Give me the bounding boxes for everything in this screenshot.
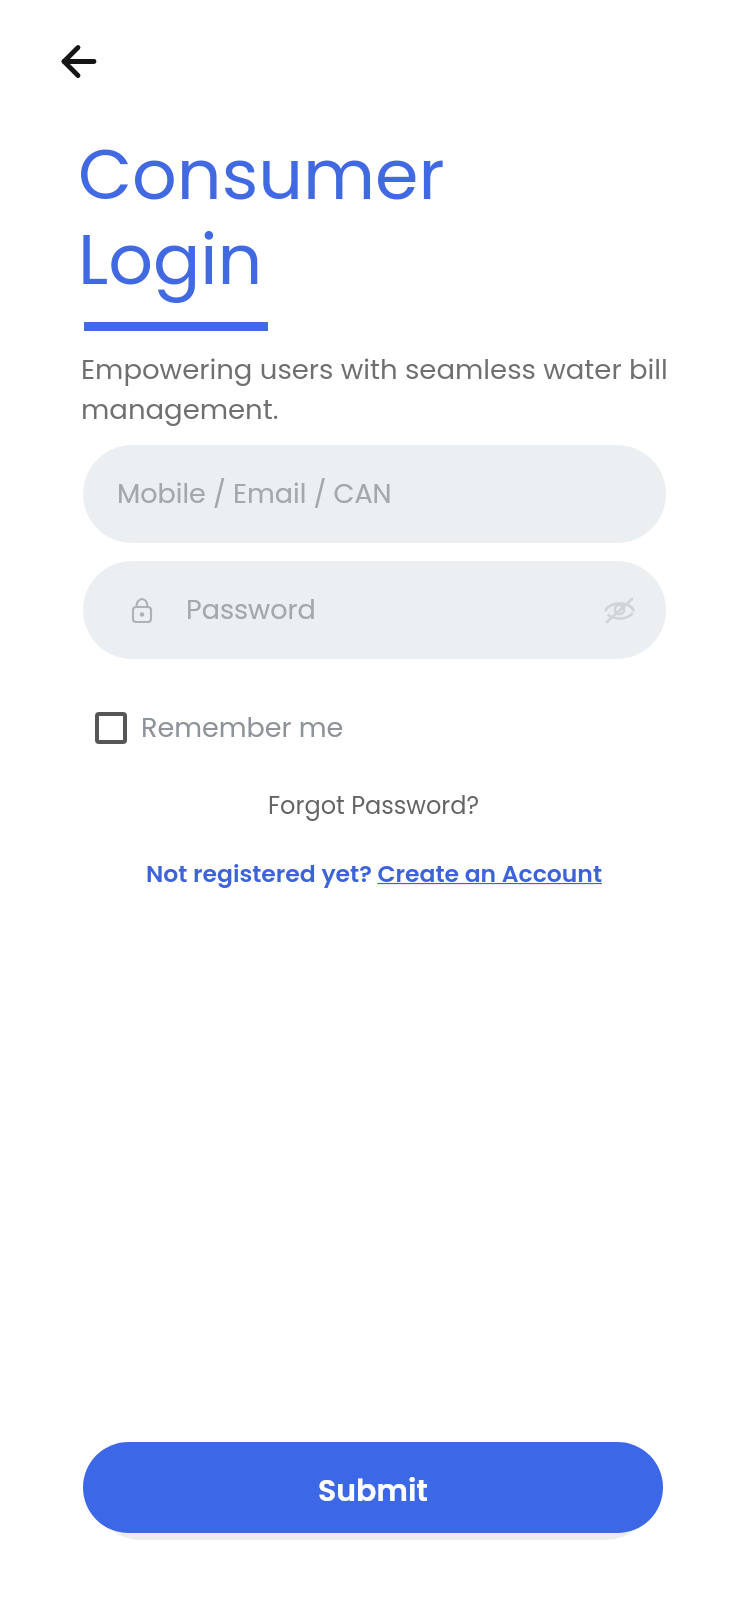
button[interactable] [56,38,102,84]
staticText: Mobile / Email / CAN [117,475,392,513]
button[interactable]: Not registered yet? Create an Account [146,857,602,890]
staticText: Consumer Login [78,125,445,309]
button[interactable]: Mobile / Email / CAN [83,445,666,543]
staticText: Remember me [141,709,344,747]
button[interactable]: Remember me [95,709,344,747]
button[interactable]: Password [83,561,666,659]
staticText: Password [186,591,316,629]
button[interactable]: Submit [83,1442,663,1533]
staticText: Empowering users with seamless water bil… [81,350,668,429]
staticText: Submit [318,1470,428,1512]
button[interactable]: Forgot Password? [268,789,480,823]
